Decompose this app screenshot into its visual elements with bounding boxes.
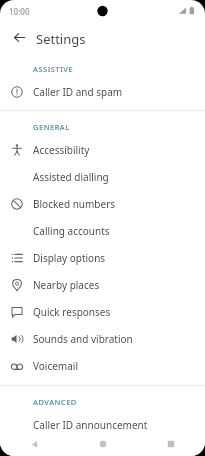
staticText: Assisted dialling [33, 170, 109, 184]
staticText: Accessibility [33, 143, 90, 157]
button[interactable]: Caller ID and spam [0, 78, 205, 105]
staticText: Display options [33, 251, 106, 265]
button[interactable]: Home [69, 432, 137, 456]
button[interactable]: Sounds and vibration [0, 325, 205, 352]
button[interactable]: Calling accounts [0, 217, 205, 244]
staticText: Caller ID and spam [33, 85, 123, 99]
button[interactable]: Assisted dialling [0, 163, 205, 190]
staticText: ASSISTIVE [33, 64, 74, 74]
staticText: Calling accounts [33, 224, 110, 238]
button[interactable]: Flip to silence [0, 438, 205, 456]
button[interactable]: Back [0, 432, 69, 456]
button[interactable]: Quick responses [0, 298, 205, 325]
button[interactable]: Voicemail [0, 352, 205, 379]
staticText: Nearby places [33, 278, 100, 292]
button[interactable]: Back [5, 23, 33, 51]
button[interactable]: Caller ID announcement [0, 411, 205, 438]
staticText: ADVANCED [33, 397, 77, 407]
staticText: Voicemail [33, 359, 78, 373]
button[interactable]: Nearby places [0, 271, 205, 298]
button[interactable]: Recents [137, 432, 205, 456]
staticText: GENERAL [33, 122, 70, 132]
staticText: Blocked numbers [33, 197, 116, 211]
staticText: Caller ID announcement [33, 418, 148, 432]
button[interactable]: Display options [0, 244, 205, 271]
staticText: Quick responses [33, 305, 111, 319]
button[interactable]: Blocked numbers [0, 190, 205, 217]
staticText: 10:00 [9, 6, 30, 17]
staticText: Flip to silence [33, 444, 97, 456]
button[interactable]: Accessibility [0, 136, 205, 163]
staticText: Settings [36, 30, 86, 48]
staticText: Sounds and vibration [33, 332, 133, 346]
